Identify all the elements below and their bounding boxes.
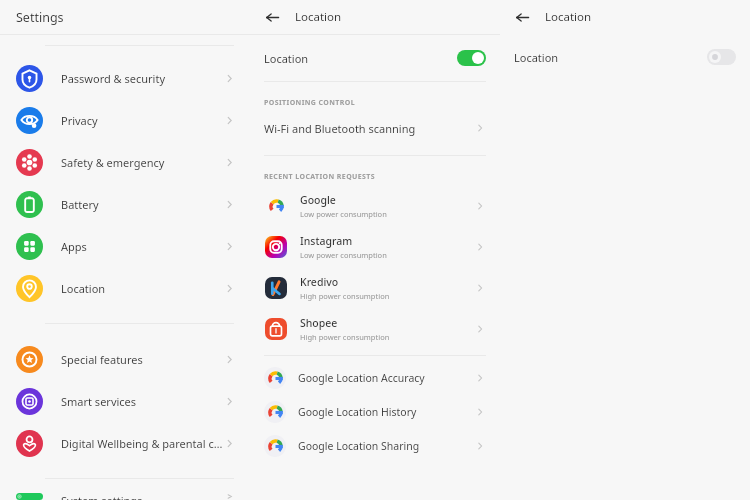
- button[interactable]: Wi-Fi and Bluetooth scanning: [250, 108, 500, 148]
- staticText: Google: [300, 193, 336, 207]
- button[interactable]: Special features: [0, 338, 250, 380]
- button[interactable]: Location: [500, 34, 750, 80]
- button[interactable]: Apps: [0, 225, 250, 267]
- staticText: Google Location Accuracy: [298, 371, 474, 385]
- button[interactable]: Shopee: [250, 308, 500, 349]
- button[interactable]: Google: [250, 185, 500, 226]
- button[interactable]: System settings: [0, 493, 250, 500]
- staticText: Google Location Sharing: [298, 439, 474, 453]
- staticText: Low power consumption: [300, 209, 387, 219]
- staticText: System settings: [61, 493, 223, 500]
- staticText: Digital Wellbeing & parental controls: [61, 436, 223, 451]
- button[interactable]: Digital Wellbeing & parental controls: [0, 422, 250, 464]
- staticText: Privacy: [61, 113, 223, 128]
- staticText: Google Location History: [298, 405, 474, 419]
- button[interactable]: Back: [264, 9, 281, 26]
- button[interactable]: Kredivo: [250, 267, 500, 308]
- staticText: Location: [61, 281, 223, 296]
- button[interactable]: Privacy: [0, 99, 250, 141]
- staticText: Shopee: [300, 316, 338, 330]
- staticText: Safety & emergency: [61, 155, 223, 170]
- staticText: Location: [545, 9, 592, 25]
- button[interactable]: Battery: [0, 183, 250, 225]
- button[interactable]: Location: [0, 267, 250, 309]
- staticText: Special features: [61, 352, 223, 367]
- staticText: Apps: [61, 239, 223, 254]
- staticText: Kredivo: [300, 275, 339, 289]
- staticText: RECENT LOCATION REQUESTS: [264, 172, 376, 182]
- staticText: Location: [514, 50, 707, 65]
- button[interactable]: Password & security: [0, 57, 250, 99]
- button[interactable]: Location toggle: [457, 50, 486, 66]
- staticText: Location: [295, 9, 342, 25]
- button[interactable]: Location toggle: [707, 49, 736, 65]
- button[interactable]: Back: [514, 9, 531, 26]
- button[interactable]: Smart services: [0, 380, 250, 422]
- staticText: Battery: [61, 197, 223, 212]
- staticText: Location: [264, 51, 457, 66]
- staticText: Low power consumption: [300, 250, 387, 260]
- button[interactable]: Safety & emergency: [0, 141, 250, 183]
- button[interactable]: Location: [250, 35, 500, 81]
- staticText: Instagram: [300, 234, 353, 248]
- staticText: Password & security: [61, 71, 223, 86]
- button[interactable]: Google Location Sharing: [250, 429, 500, 463]
- staticText: Settings: [16, 9, 64, 26]
- staticText: Wi-Fi and Bluetooth scanning: [264, 121, 474, 136]
- staticText: Smart services: [61, 394, 223, 409]
- staticText: POSITIONING CONTROL: [264, 98, 356, 108]
- button[interactable]: Google Location History: [250, 395, 500, 429]
- staticText: High power consumption: [300, 332, 390, 342]
- staticText: High power consumption: [300, 291, 390, 301]
- button[interactable]: Instagram: [250, 226, 500, 267]
- button[interactable]: Google Location Accuracy: [250, 361, 500, 395]
